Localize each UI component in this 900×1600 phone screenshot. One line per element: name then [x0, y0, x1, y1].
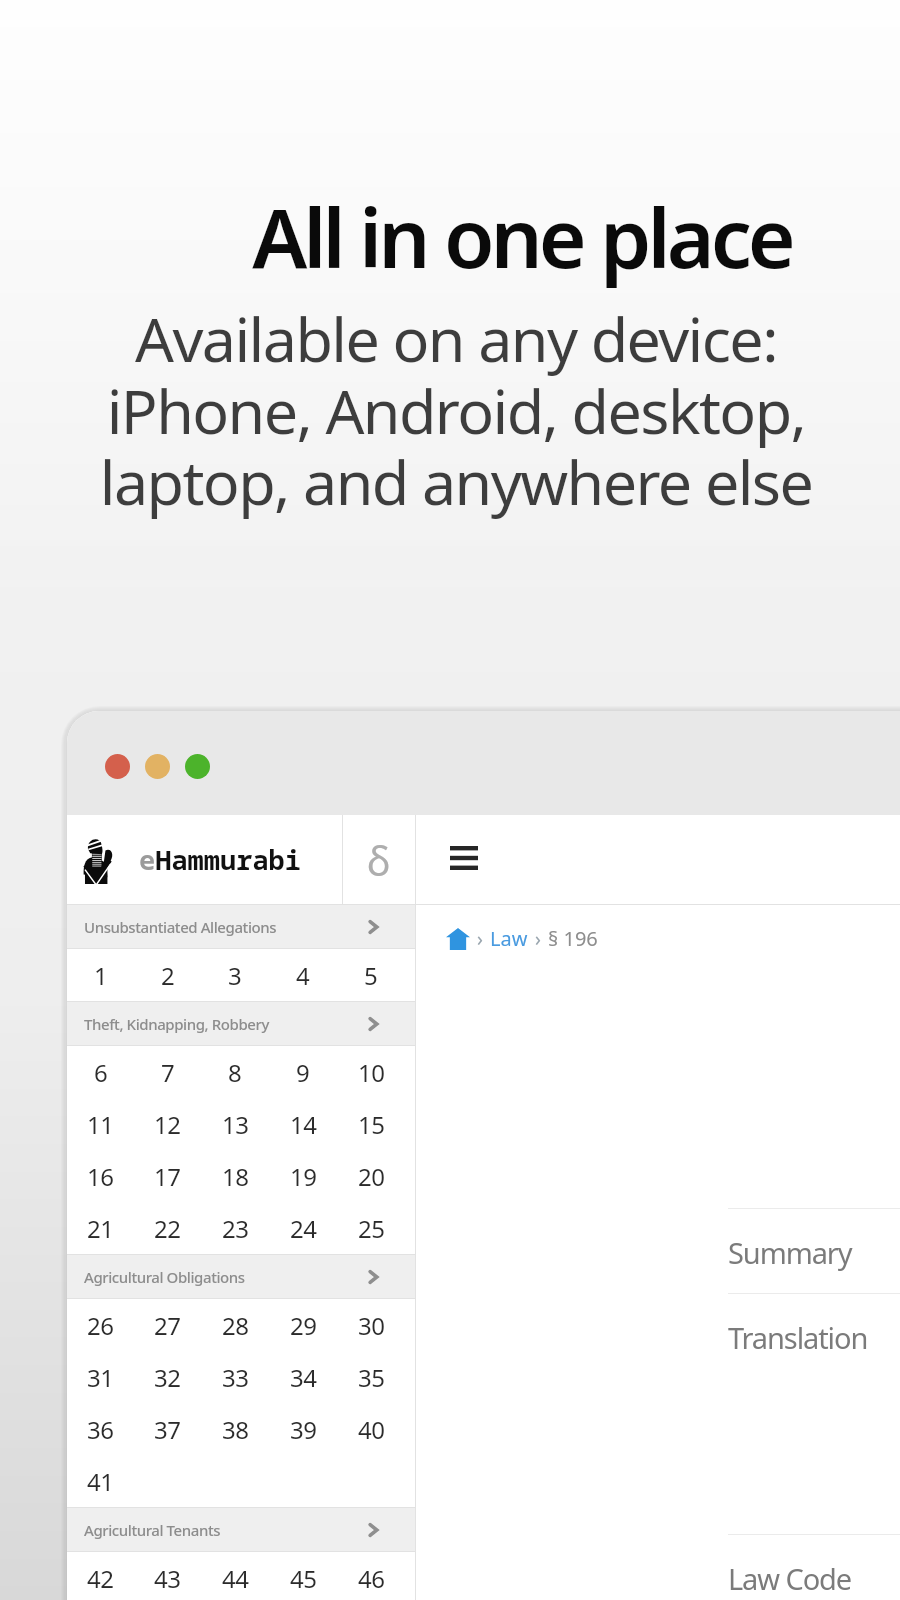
- button[interactable]: 28: [201, 1299, 269, 1351]
- button[interactable]: 34: [269, 1351, 337, 1403]
- button[interactable]: 21: [67, 1202, 134, 1254]
- button[interactable]: 5: [337, 949, 405, 1001]
- button[interactable]: 2: [134, 949, 201, 1001]
- staticText: 21: [87, 1212, 114, 1245]
- button[interactable]: 19: [269, 1150, 337, 1202]
- button[interactable]: 23: [201, 1202, 269, 1254]
- staticText: 23: [222, 1212, 249, 1245]
- button[interactable]: 44: [201, 1552, 269, 1600]
- button[interactable]: 18: [201, 1150, 269, 1202]
- button[interactable]: Agricultural Tenants: [67, 1508, 415, 1551]
- button[interactable]: 4: [269, 949, 337, 1001]
- staticText: 38: [222, 1413, 249, 1446]
- button[interactable]: 22: [134, 1202, 201, 1254]
- button[interactable]: 36: [67, 1403, 134, 1455]
- button[interactable]: 25: [337, 1202, 405, 1254]
- staticText: 35: [358, 1361, 385, 1394]
- button[interactable]: 46: [337, 1552, 405, 1600]
- staticText: 12: [154, 1108, 181, 1141]
- staticText: 18: [222, 1160, 249, 1193]
- button[interactable]: 10: [337, 1046, 405, 1098]
- staticText: Unsubstantiated Allegations: [84, 917, 277, 937]
- staticText: 40: [358, 1413, 385, 1446]
- button[interactable]: 24: [269, 1202, 337, 1254]
- button[interactable]: 7: [134, 1046, 201, 1098]
- button[interactable]: 35: [337, 1351, 405, 1403]
- staticText: 41: [87, 1465, 114, 1498]
- staticText: 2: [161, 959, 175, 992]
- staticText: All in one place: [72, 180, 900, 292]
- button[interactable]: 38: [201, 1403, 269, 1455]
- button[interactable]: 33: [201, 1351, 269, 1403]
- staticText: 6: [94, 1056, 108, 1089]
- staticText: δ: [367, 833, 391, 887]
- button[interactable]: 45: [269, 1552, 337, 1600]
- staticText: 31: [87, 1361, 114, 1394]
- staticText: 26: [87, 1309, 114, 1342]
- staticText: 27: [154, 1309, 181, 1342]
- staticText: Summary: [728, 1233, 852, 1272]
- button[interactable]: Summary: [728, 1209, 900, 1293]
- staticText: Agricultural Obligations: [84, 1267, 245, 1287]
- button[interactable]: 15: [337, 1098, 405, 1150]
- button[interactable]: 41: [67, 1455, 134, 1507]
- staticText: 16: [87, 1160, 114, 1193]
- button[interactable]: Agricultural Obligations: [67, 1255, 415, 1298]
- staticText: 7: [161, 1056, 175, 1089]
- staticText: 33: [222, 1361, 249, 1394]
- staticText: 20: [358, 1160, 385, 1193]
- staticText: eHammurabi: [139, 841, 301, 878]
- staticText: Law Code: [728, 1559, 852, 1598]
- staticText: 32: [154, 1361, 181, 1394]
- button[interactable]: Menu: [442, 836, 486, 880]
- staticText: 39: [290, 1413, 317, 1446]
- button[interactable]: 11: [67, 1098, 134, 1150]
- button[interactable]: 13: [201, 1098, 269, 1150]
- button[interactable]: 37: [134, 1403, 201, 1455]
- button[interactable]: Delta: [343, 815, 415, 904]
- button[interactable]: 17: [134, 1150, 201, 1202]
- staticText: 46: [358, 1562, 385, 1595]
- staticText: 30: [358, 1309, 385, 1342]
- button[interactable]: 42: [67, 1552, 134, 1600]
- staticText: 15: [358, 1108, 385, 1141]
- button[interactable]: Unsubstantiated Allegations: [67, 905, 415, 948]
- button[interactable]: 32: [134, 1351, 201, 1403]
- button[interactable]: 1: [67, 949, 134, 1001]
- staticText: 22: [154, 1212, 181, 1245]
- staticText: Available on any device: iPhone, Android…: [6, 297, 900, 523]
- button[interactable]: 12: [134, 1098, 201, 1150]
- button[interactable]: 39: [269, 1403, 337, 1455]
- staticText: Agricultural Tenants: [84, 1520, 221, 1540]
- staticText: 9: [296, 1056, 310, 1089]
- staticText: 42: [87, 1562, 114, 1595]
- button[interactable]: 14: [269, 1098, 337, 1150]
- staticText: 11: [87, 1108, 114, 1141]
- button[interactable]: 31: [67, 1351, 134, 1403]
- staticText: 36: [87, 1413, 114, 1446]
- button[interactable]: 8: [201, 1046, 269, 1098]
- button[interactable]: 29: [269, 1299, 337, 1351]
- button[interactable]: eHammurabi: [67, 815, 342, 904]
- button[interactable]: 3: [201, 949, 269, 1001]
- button[interactable]: 16: [67, 1150, 134, 1202]
- staticText: 17: [154, 1160, 181, 1193]
- staticText: ›: [535, 926, 541, 952]
- button[interactable]: 43: [134, 1552, 201, 1600]
- staticText: 25: [358, 1212, 385, 1245]
- staticText: 29: [290, 1309, 317, 1342]
- button[interactable]: 40: [337, 1403, 405, 1455]
- button[interactable]: Theft, Kidnapping, Robbery: [67, 1002, 415, 1045]
- button[interactable]: Law Code: [728, 1535, 900, 1600]
- staticText: 19: [290, 1160, 317, 1193]
- button[interactable]: 20: [337, 1150, 405, 1202]
- button[interactable]: 30: [337, 1299, 405, 1351]
- button[interactable]: 9: [269, 1046, 337, 1098]
- button[interactable]: Translation: [728, 1294, 900, 1534]
- button[interactable]: 27: [134, 1299, 201, 1351]
- staticText: 5: [364, 959, 378, 992]
- button[interactable]: 26: [67, 1299, 134, 1351]
- staticText: Law: [490, 925, 528, 952]
- button[interactable]: 6: [67, 1046, 134, 1098]
- staticText: 3: [228, 959, 242, 992]
